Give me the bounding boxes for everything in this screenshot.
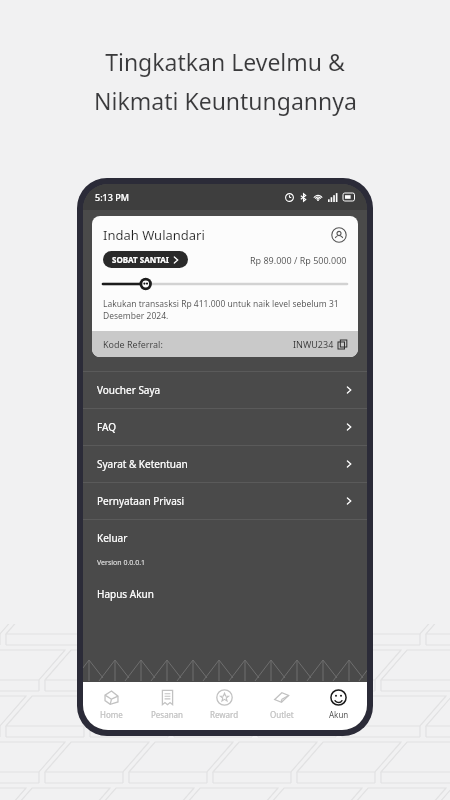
staticText: Version 0.0.0.1 xyxy=(97,558,146,568)
button[interactable]: Pernyataan Privasi xyxy=(83,483,367,519)
staticText: Pernyataan Privasi xyxy=(97,494,185,508)
button[interactable]: Kode Referral: xyxy=(92,331,358,357)
staticText: Akun xyxy=(329,709,349,720)
staticText: Lakukan transasksi Rp 411.000 untuk naik… xyxy=(103,298,347,322)
staticText: Home xyxy=(100,709,123,720)
staticText: Pesanan xyxy=(151,709,184,720)
staticText: FAQ xyxy=(97,420,116,434)
button[interactable]: Reward xyxy=(196,682,253,730)
staticText: Syarat & Ketentuan xyxy=(97,457,188,471)
staticText: 5:13 PM xyxy=(95,191,129,203)
staticText: Voucher Saya xyxy=(97,383,161,397)
staticText: Keluar xyxy=(97,531,128,545)
button[interactable]: Home xyxy=(83,682,139,730)
button[interactable]: Akun xyxy=(310,682,367,730)
staticText: SOBAT SANTAI xyxy=(112,254,169,265)
staticText: Rp 89.000 / Rp 500.000 xyxy=(250,254,347,266)
button[interactable]: FAQ xyxy=(83,409,367,445)
other: Salin kode xyxy=(338,340,347,349)
staticText: Kode Referral: xyxy=(103,338,163,350)
button[interactable]: Syarat & Ketentuan xyxy=(83,446,367,482)
button[interactable]: Voucher Saya xyxy=(83,372,367,408)
staticText: Nikmati Keuntungannya xyxy=(94,85,357,116)
button[interactable]: Profil xyxy=(331,227,347,243)
button[interactable]: Pesanan xyxy=(139,682,196,730)
staticText: Indah Wulandari xyxy=(103,226,331,244)
button[interactable]: Keluar xyxy=(83,520,367,556)
staticText: Outlet xyxy=(270,709,294,720)
staticText: INWU234 xyxy=(293,338,334,350)
staticText: Tingkatkan Levelmu & xyxy=(105,46,345,77)
staticText: Reward xyxy=(210,709,239,720)
button[interactable]: Outlet xyxy=(253,682,310,730)
button[interactable]: Hapus Akun xyxy=(83,580,367,608)
staticText: Hapus Akun xyxy=(97,587,154,601)
button[interactable]: SOBAT SANTAI xyxy=(103,251,188,268)
